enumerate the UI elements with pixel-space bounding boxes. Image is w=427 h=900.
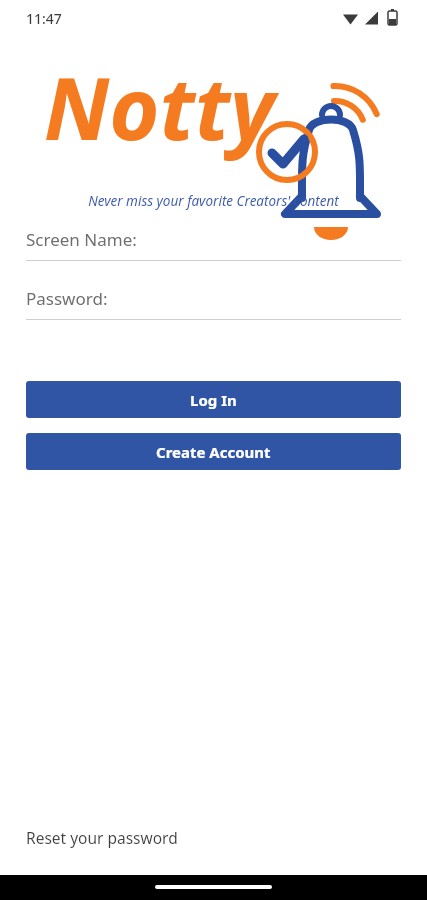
button[interactable]: Create Account: [26, 433, 401, 470]
staticText: Create Account: [156, 442, 271, 462]
staticText: Screen Name:: [26, 228, 137, 251]
button[interactable]: Reset your password: [0, 815, 427, 859]
staticText: Notty: [44, 48, 275, 165]
staticText: Password:: [26, 287, 108, 310]
button[interactable]: Log In: [26, 381, 401, 418]
other: Home: [155, 885, 272, 889]
button[interactable]: Screen Name:: [26, 228, 401, 261]
staticText: Log In: [190, 390, 237, 410]
staticText: 11:47: [26, 9, 62, 28]
button[interactable]: Password:: [26, 287, 401, 320]
staticText: Reset your password: [26, 827, 178, 848]
staticText: Never miss your favorite Creators' conte…: [88, 192, 339, 210]
